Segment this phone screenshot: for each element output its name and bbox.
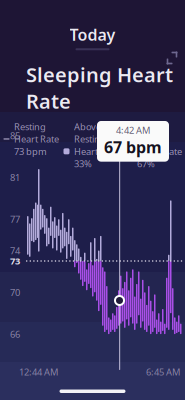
staticText: 70 — [10, 286, 20, 298]
staticText: 33% — [74, 157, 92, 170]
staticText: 4:42 AM — [116, 124, 150, 136]
button[interactable]: Collapse chart — [159, 44, 185, 70]
staticText: 85 — [10, 129, 20, 142]
staticText: Today — [69, 24, 115, 45]
staticText: 73 bpm — [14, 145, 47, 158]
staticText: 6:45 AM — [146, 366, 180, 378]
staticText: Resting — [14, 120, 46, 133]
staticText: Heart Rate — [74, 145, 119, 158]
staticText: 67 bpm — [104, 136, 162, 158]
staticText: 67% — [137, 157, 155, 170]
staticText: Heart Rate — [14, 133, 59, 145]
staticText: 66 — [10, 328, 20, 340]
staticText: Heart Rate — [137, 145, 182, 158]
staticText: 12:44 AM — [19, 366, 58, 378]
staticText: 74 — [10, 244, 20, 257]
staticText: Above Resting — [74, 120, 106, 145]
staticText: Sleeping Heart Rate — [26, 61, 173, 114]
staticText: Below Resting — [137, 120, 169, 145]
staticText: 77 — [10, 213, 20, 225]
staticText: 81 — [10, 171, 20, 184]
staticText: 73 — [10, 255, 20, 267]
